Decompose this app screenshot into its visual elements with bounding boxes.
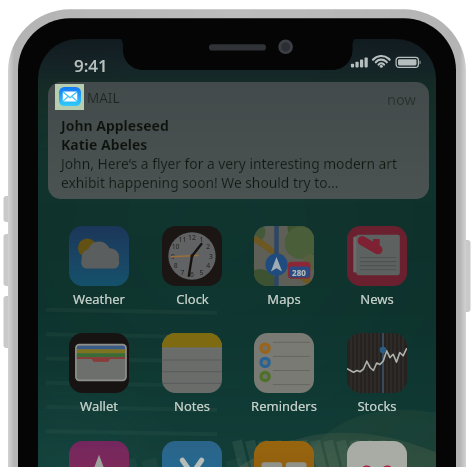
staticText: Katie Abeles bbox=[61, 135, 148, 154]
button[interactable]: Clock bbox=[148, 226, 236, 310]
staticText: John, Here‘s a flyer for a very interest… bbox=[61, 154, 397, 173]
staticText: Wallet bbox=[80, 397, 118, 415]
staticText: John Appleseed bbox=[61, 116, 169, 135]
button[interactable]: iTunes Store bbox=[55, 441, 143, 467]
button[interactable]: App Store bbox=[148, 441, 236, 467]
button[interactable]: Notes bbox=[148, 333, 236, 417]
staticText: MAIL bbox=[87, 89, 120, 107]
staticText: News bbox=[360, 290, 394, 308]
button[interactable]: Wallet bbox=[55, 333, 143, 417]
button[interactable]: MAIL bbox=[48, 82, 429, 199]
button[interactable]: Health bbox=[333, 441, 421, 467]
staticText: now bbox=[387, 89, 416, 109]
staticText: exhibit happening soon! We should try to… bbox=[61, 173, 339, 192]
staticText: Notes bbox=[174, 397, 210, 415]
button[interactable]: Weather bbox=[55, 226, 143, 310]
staticText: Clock bbox=[176, 290, 209, 308]
staticText: Reminders bbox=[251, 397, 317, 415]
staticText: Stocks bbox=[357, 397, 397, 415]
button[interactable]: iBooks bbox=[240, 441, 328, 467]
button[interactable]: Reminders bbox=[240, 333, 328, 417]
button[interactable]: Maps bbox=[240, 226, 328, 310]
staticText: Weather bbox=[73, 290, 125, 308]
staticText: 9:41 bbox=[74, 54, 108, 77]
button[interactable]: Stocks bbox=[333, 333, 421, 417]
staticText: Maps bbox=[267, 290, 301, 308]
button[interactable]: News bbox=[333, 226, 421, 310]
